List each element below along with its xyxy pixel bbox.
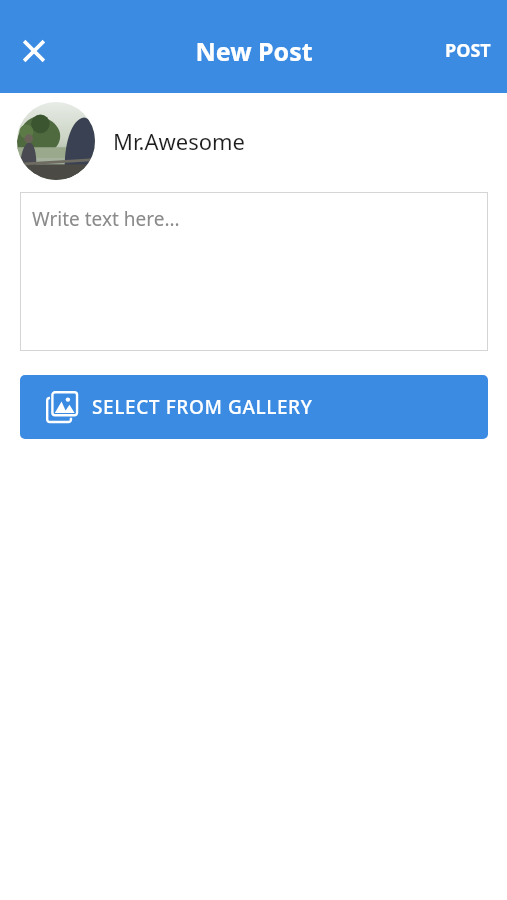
staticText: POST [445,38,491,63]
button[interactable]: POST [429,28,507,73]
button[interactable]: Close [8,25,60,77]
button[interactable]: Mr.Awesome [0,93,507,188]
button[interactable]: SELECT FROM GALLERY [20,375,488,439]
staticText: Write text here... [32,206,180,232]
staticText: SELECT FROM GALLERY [92,394,313,420]
button[interactable]: Write text here... [20,192,488,351]
staticText: New Post [195,34,313,68]
staticText: Mr.Awesome [113,126,246,156]
